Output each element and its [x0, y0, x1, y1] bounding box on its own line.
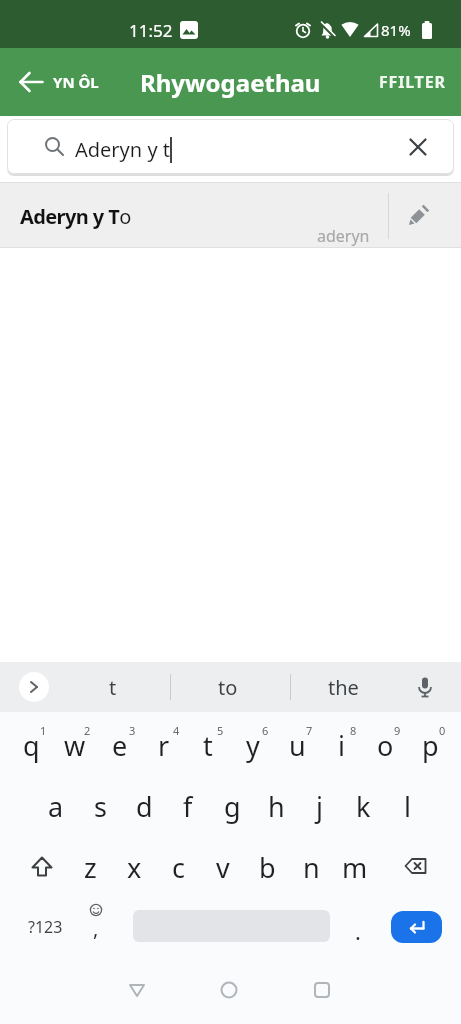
- staticText: b: [259, 849, 276, 886]
- staticText: g: [224, 788, 241, 825]
- button[interactable]: a: [34, 777, 78, 835]
- staticText: to: [218, 674, 238, 701]
- staticText: the: [328, 674, 359, 701]
- button[interactable]: i: [319, 716, 363, 774]
- staticText: l: [404, 788, 411, 825]
- staticText: e: [112, 727, 128, 764]
- staticText: 4: [173, 723, 180, 738]
- button[interactable]: f: [166, 777, 210, 835]
- button[interactable]: t: [73, 664, 153, 710]
- button[interactable]: [396, 192, 442, 238]
- staticText: 1: [40, 723, 47, 738]
- button[interactable]: s: [78, 777, 122, 835]
- button[interactable]: YN ÔL: [0, 63, 99, 101]
- staticText: n: [303, 849, 320, 886]
- staticText: 2: [84, 723, 91, 738]
- button[interactable]: c: [156, 838, 200, 896]
- staticText: w: [64, 727, 86, 764]
- button[interactable]: to: [188, 664, 268, 710]
- staticText: z: [84, 849, 97, 886]
- staticText: 9: [394, 723, 401, 738]
- staticText: aderyn: [317, 225, 370, 247]
- button[interactable]: x: [112, 838, 156, 896]
- button[interactable]: z: [68, 838, 112, 896]
- button[interactable]: y: [231, 716, 275, 774]
- staticText: ,: [93, 915, 99, 942]
- staticText: u: [289, 727, 306, 764]
- staticText: o: [377, 727, 394, 764]
- staticText: 0: [439, 723, 446, 738]
- button[interactable]: j: [297, 777, 341, 835]
- button[interactable]: w: [53, 716, 97, 774]
- button[interactable]: [400, 129, 436, 165]
- staticText: r: [158, 727, 170, 764]
- staticText: c: [172, 849, 185, 886]
- staticText: a: [48, 788, 64, 825]
- staticText: d: [136, 788, 153, 825]
- button[interactable]: r: [142, 716, 186, 774]
- button[interactable]: FFILTER: [379, 61, 461, 103]
- staticText: 7: [306, 723, 313, 738]
- staticText: 8: [350, 723, 357, 738]
- button[interactable]: Aderyn y t: [7, 119, 454, 174]
- staticText: .: [355, 916, 361, 946]
- staticText: Aderyn y To: [20, 203, 131, 230]
- staticText: t: [203, 727, 213, 764]
- button[interactable]: Aderyn y To: [0, 182, 461, 248]
- button[interactable]: n: [289, 838, 333, 896]
- button[interactable]: b: [245, 838, 289, 896]
- button[interactable]: u: [275, 716, 319, 774]
- button[interactable]: p: [408, 716, 452, 774]
- button[interactable]: [115, 968, 159, 1012]
- staticText: f: [183, 788, 193, 825]
- staticText: 3: [129, 723, 136, 738]
- button[interactable]: k: [341, 777, 385, 835]
- staticText: ?123: [28, 916, 63, 938]
- staticText: t: [109, 674, 117, 701]
- staticText: Rhywogaethau: [140, 66, 321, 99]
- button[interactable]: d: [122, 777, 166, 835]
- button[interactable]: m: [333, 838, 377, 896]
- button[interactable]: [391, 911, 442, 943]
- staticText: 11:52: [129, 19, 173, 42]
- staticText: q: [23, 727, 40, 764]
- button[interactable]: v: [201, 838, 245, 896]
- staticText: YN ÔL: [53, 72, 99, 92]
- staticText: 81%: [381, 20, 411, 40]
- button[interactable]: h: [254, 777, 298, 835]
- staticText: y: [246, 727, 260, 764]
- staticText: v: [216, 849, 230, 886]
- button[interactable]: ,: [75, 901, 119, 949]
- staticText: Aderyn y t: [75, 136, 170, 163]
- button[interactable]: [300, 968, 344, 1012]
- button[interactable]: l: [385, 777, 429, 835]
- staticText: s: [94, 788, 107, 825]
- staticText: p: [422, 727, 439, 764]
- staticText: x: [127, 849, 142, 886]
- staticText: k: [356, 788, 371, 825]
- button[interactable]: [207, 968, 251, 1012]
- button[interactable]: e: [98, 716, 142, 774]
- button[interactable]: t: [186, 716, 230, 774]
- button[interactable]: [392, 843, 440, 891]
- button[interactable]: .: [343, 911, 373, 951]
- button[interactable]: the: [303, 664, 383, 710]
- button[interactable]: q: [9, 716, 53, 774]
- button[interactable]: o: [363, 716, 407, 774]
- staticText: i: [338, 727, 345, 764]
- button[interactable]: [18, 843, 66, 891]
- staticText: FFILTER: [379, 71, 446, 93]
- button[interactable]: ?123: [15, 903, 75, 951]
- button[interactable]: g: [210, 777, 254, 835]
- staticText: 5: [217, 723, 224, 738]
- staticText: 6: [262, 723, 269, 738]
- staticText: m: [342, 849, 368, 886]
- staticText: h: [268, 788, 285, 825]
- button[interactable]: [19, 672, 49, 702]
- button[interactable]: [405, 667, 445, 707]
- staticText: j: [316, 788, 323, 825]
